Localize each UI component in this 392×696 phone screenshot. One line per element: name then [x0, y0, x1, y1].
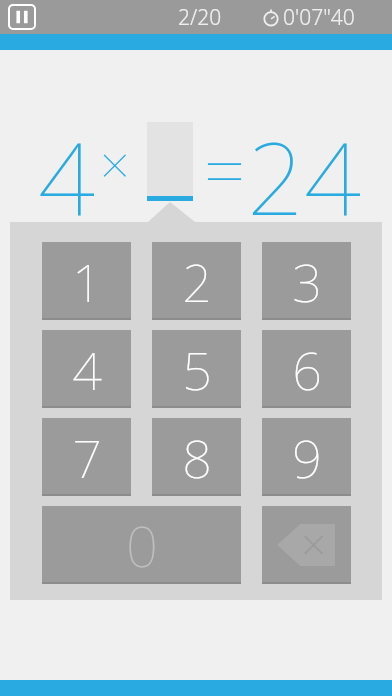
staticText: 1: [72, 246, 102, 317]
button[interactable]: 4: [42, 330, 131, 408]
staticText: 5: [182, 334, 212, 405]
staticText: 4: [38, 108, 95, 244]
button[interactable]: Backspace: [262, 506, 351, 584]
staticText: 0'07"40: [283, 3, 355, 32]
button[interactable]: 9: [262, 418, 351, 496]
staticText: 9: [292, 422, 322, 493]
button[interactable]: 2: [152, 242, 241, 320]
staticText: 0: [126, 507, 158, 583]
staticText: ×: [100, 128, 130, 199]
staticText: 24: [247, 108, 361, 244]
button[interactable]: 0: [42, 506, 241, 584]
button[interactable]: 1: [42, 242, 131, 320]
button[interactable]: Pause: [8, 4, 36, 30]
staticText: 3: [292, 246, 322, 317]
staticText: 2/20: [178, 3, 222, 32]
staticText: 4: [72, 334, 102, 405]
staticText: =: [204, 120, 246, 218]
button[interactable]: 6: [262, 330, 351, 408]
staticText: 2: [182, 246, 212, 317]
staticText: 6: [292, 334, 322, 405]
button[interactable]: 7: [42, 418, 131, 496]
button[interactable]: 3: [262, 242, 351, 320]
staticText: 8: [182, 422, 212, 493]
button[interactable]: 5: [152, 330, 241, 408]
staticText: 7: [72, 422, 102, 493]
button[interactable]: 8: [152, 418, 241, 496]
